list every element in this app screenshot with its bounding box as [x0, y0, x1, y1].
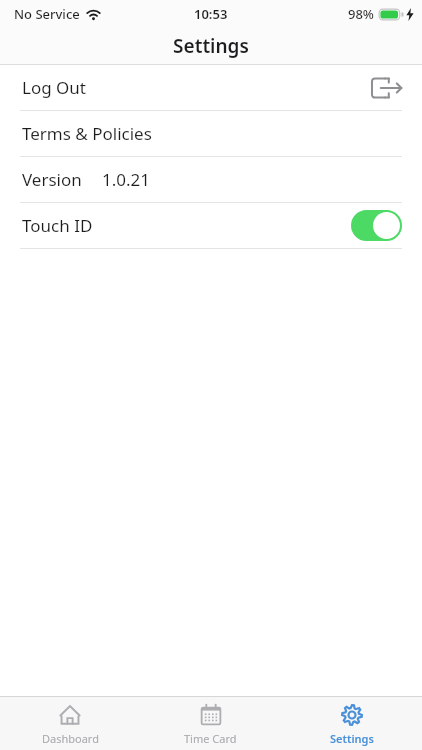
staticText: 10:53	[194, 5, 228, 23]
staticText: Log Out	[22, 76, 86, 99]
button[interactable]: Touch ID	[0, 203, 422, 248]
button[interactable]: Dashboard	[0, 697, 140, 750]
staticText: 98%	[348, 5, 374, 23]
button[interactable]: Terms & Policies	[0, 111, 422, 156]
staticText: No Service	[14, 5, 80, 23]
button[interactable]: Time Card	[140, 697, 281, 750]
button[interactable]: Log Out	[0, 65, 422, 110]
staticText: Terms & Policies	[22, 122, 152, 145]
staticText: 1.0.21	[102, 168, 151, 191]
staticText: Dashboard	[42, 731, 99, 746]
staticText: Version	[22, 168, 82, 191]
staticText: Touch ID	[22, 214, 93, 237]
button[interactable]: Version	[0, 157, 422, 202]
button[interactable]: Settings	[281, 697, 422, 750]
staticText: Time Card	[184, 731, 237, 746]
other: Log out	[372, 76, 402, 100]
staticText: Settings	[173, 33, 249, 59]
button[interactable]: Touch ID toggle	[351, 210, 402, 241]
staticText: Settings	[330, 731, 374, 746]
